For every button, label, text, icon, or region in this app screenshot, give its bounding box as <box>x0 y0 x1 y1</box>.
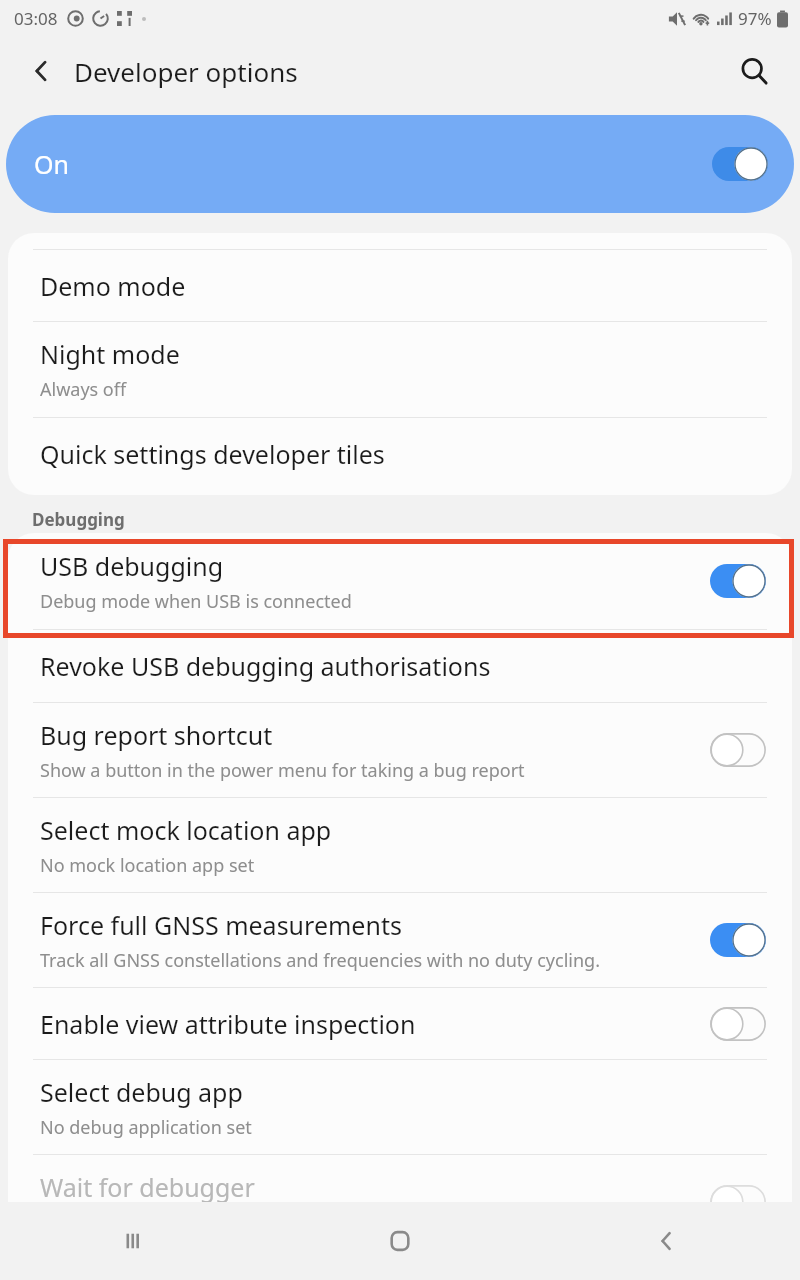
button[interactable]: USB debugging <box>8 533 792 629</box>
staticText: Revoke USB debugging authorisations <box>40 649 491 683</box>
other: Switch on <box>712 147 768 181</box>
button[interactable]: Quick settings developer tiles <box>8 418 792 489</box>
button[interactable]: Home <box>266 1202 533 1280</box>
button[interactable]: Recent apps <box>0 1202 266 1280</box>
button[interactable]: Search <box>728 45 780 97</box>
staticText: Demo mode <box>40 269 186 303</box>
staticText: Debug mode when USB is connected <box>40 589 352 614</box>
staticText: 03:08 <box>14 7 58 30</box>
staticText: No mock location app set <box>40 853 255 878</box>
other: Switch on <box>710 923 766 957</box>
button[interactable]: Wait for debugger <box>8 1155 792 1249</box>
staticText: No debug application set <box>40 1115 252 1140</box>
button[interactable]: Night mode <box>8 322 792 417</box>
staticText: Select mock location app <box>40 813 332 847</box>
staticText: USB debugging <box>40 549 224 583</box>
staticText: Debugging <box>32 508 125 531</box>
staticText: Developer options <box>74 54 298 89</box>
button[interactable]: Revoke USB debugging authorisations <box>8 630 792 702</box>
staticText: Force full GNSS measurements <box>40 908 402 942</box>
staticText: Track all GNSS constellations and freque… <box>40 948 600 973</box>
button[interactable]: Select debug app <box>8 1060 792 1154</box>
button[interactable]: Select mock location app <box>8 798 792 892</box>
button[interactable]: Back <box>16 45 68 97</box>
button[interactable]: Bug report shortcut <box>8 703 792 797</box>
staticText: Quick settings developer tiles <box>40 437 385 471</box>
button[interactable]: On <box>6 115 794 213</box>
other: Switch off <box>710 733 766 767</box>
staticText: Always off <box>40 377 127 402</box>
staticText: Show a button in the power menu for taki… <box>40 758 525 783</box>
staticText: Select debug app <box>40 1075 243 1109</box>
staticText: 97% <box>738 7 772 30</box>
other: Switch off <box>710 1007 766 1041</box>
other: Switch on <box>710 564 766 598</box>
other: Switch off <box>710 1185 766 1219</box>
button[interactable]: Force full GNSS measurements <box>8 893 792 987</box>
button[interactable]: Demo mode <box>8 250 792 321</box>
staticText: Night mode <box>40 337 180 371</box>
staticText: Bug report shortcut <box>40 718 273 752</box>
staticText: Debug application waits for debugger to … <box>40 1210 588 1235</box>
staticText: Wait for debugger <box>40 1170 255 1204</box>
button[interactable]: Enable view attribute inspection <box>8 988 792 1059</box>
button[interactable]: Back <box>533 1202 800 1280</box>
staticText: On <box>34 147 69 181</box>
staticText: Enable view attribute inspection <box>40 1007 416 1041</box>
